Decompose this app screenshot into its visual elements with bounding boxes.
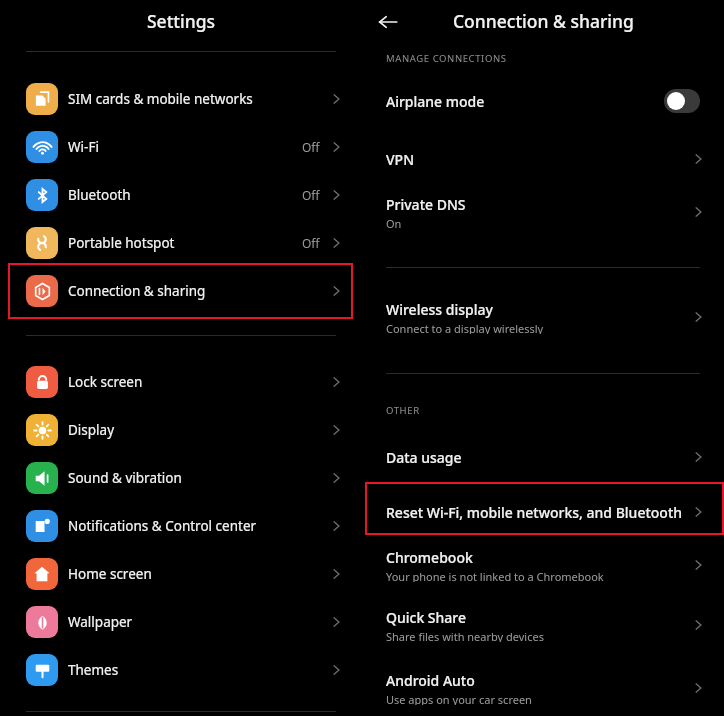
staticText: Portable hotspot	[68, 234, 175, 252]
button[interactable]: Reset Wi-Fi, mobile networks, and Blueto…	[362, 495, 724, 529]
staticText: Chromebook	[386, 548, 473, 567]
button[interactable]: Portable hotspot	[0, 227, 362, 259]
staticText: Reset Wi-Fi, mobile networks, and Blueto…	[386, 503, 683, 522]
staticText: Display	[68, 421, 115, 439]
staticText: Off	[302, 235, 320, 251]
button[interactable]: Airplane mode	[362, 86, 724, 116]
button[interactable]: VPN	[362, 142, 724, 176]
staticText: Private DNS	[386, 195, 466, 214]
staticText: SIM cards & mobile networks	[68, 90, 253, 108]
button[interactable]: Chromebook	[362, 548, 724, 582]
staticText: Use apps on your car screen	[386, 692, 532, 705]
button[interactable]: Wallpaper	[0, 606, 362, 638]
button[interactable]: Wi-Fi	[0, 131, 362, 163]
staticText: Settings	[147, 9, 216, 33]
button[interactable]: Back	[372, 6, 404, 38]
staticText: Lock screen	[68, 373, 143, 391]
staticText: Airplane mode	[386, 92, 485, 111]
staticText: Home screen	[68, 565, 152, 583]
button[interactable]: Connection & sharing	[0, 275, 362, 307]
staticText: Sound & vibration	[68, 469, 182, 487]
staticText: Connection & sharing	[453, 9, 634, 33]
staticText: On	[386, 216, 402, 229]
button[interactable]: Bluetooth	[0, 179, 362, 211]
button[interactable]: Wireless display	[362, 300, 724, 334]
staticText: Bluetooth	[68, 186, 131, 204]
button[interactable]: Display	[0, 414, 362, 446]
staticText: Connect to a display wirelessly	[386, 321, 544, 334]
button[interactable]: Android Auto	[362, 671, 724, 705]
staticText: OTHER	[386, 404, 420, 417]
staticText: Wireless display	[386, 300, 493, 319]
staticText: Off	[302, 187, 320, 203]
staticText: Your phone is not linked to a Chromebook	[386, 569, 604, 582]
button[interactable]: Data usage	[362, 440, 724, 474]
staticText: Quick Share	[386, 608, 467, 627]
staticText: Connection & sharing	[68, 282, 206, 300]
staticText: Wi-Fi	[68, 138, 99, 156]
button[interactable]: Lock screen	[0, 366, 362, 398]
staticText: VPN	[386, 150, 415, 169]
staticText: Wallpaper	[68, 613, 133, 631]
staticText: Themes	[68, 661, 119, 679]
button[interactable]: Sound & vibration	[0, 462, 362, 494]
button[interactable]: SIM cards & mobile networks	[0, 83, 362, 115]
staticText: Data usage	[386, 448, 462, 467]
button[interactable]: Home screen	[0, 558, 362, 590]
staticText: Android Auto	[386, 671, 475, 690]
staticText: Notifications & Control center	[68, 517, 257, 535]
staticText: MANAGE CONNECTIONS	[386, 52, 507, 65]
button[interactable]: Themes	[0, 654, 362, 686]
button[interactable]: Quick Share	[362, 608, 724, 642]
staticText: Off	[302, 139, 320, 155]
staticText: Share files with nearby devices	[386, 629, 544, 642]
button[interactable]: Airplane mode toggle	[664, 89, 700, 113]
button[interactable]: Notifications & Control center	[0, 510, 362, 542]
button[interactable]: Private DNS	[362, 195, 724, 229]
